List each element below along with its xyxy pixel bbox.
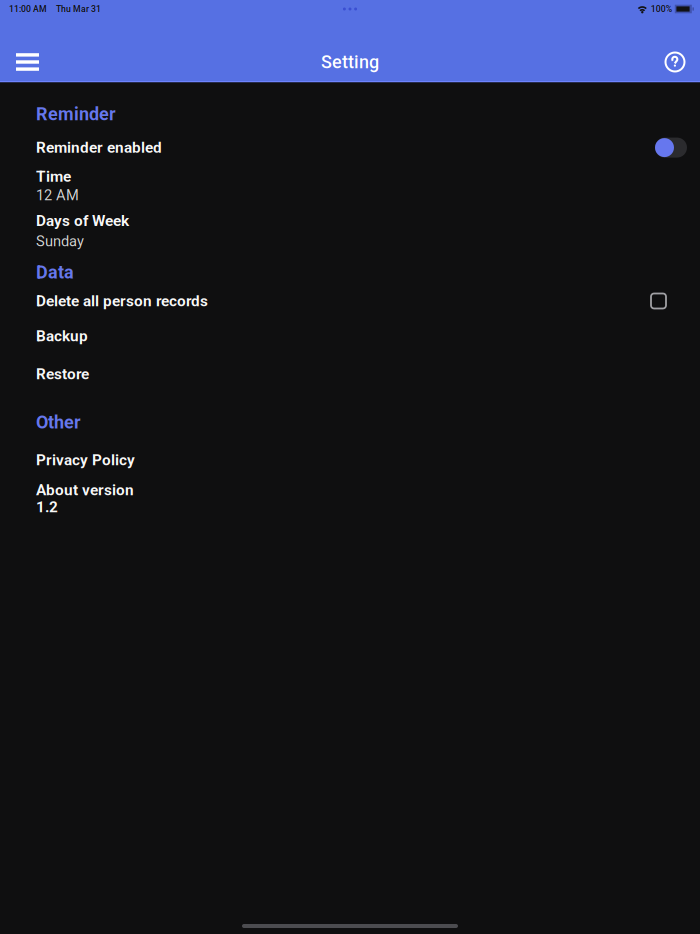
button[interactable]: Days of Week <box>0 204 700 250</box>
staticText: 11:00 AM <box>9 4 47 14</box>
staticText: 100% <box>651 4 672 14</box>
staticText: Setting <box>321 51 379 73</box>
button[interactable]: About version <box>0 469 700 516</box>
staticText: Other <box>36 412 81 433</box>
staticText: About version <box>36 481 134 499</box>
staticText: Data <box>36 262 74 283</box>
staticText: Reminder enabled <box>36 139 162 157</box>
staticText: Sunday <box>36 233 84 250</box>
staticText: Reminder <box>36 103 116 125</box>
staticText: 12 AM <box>36 187 79 204</box>
button[interactable]: Backup <box>0 310 700 345</box>
staticText: Days of Week <box>36 212 129 230</box>
button[interactable]: Help <box>651 43 700 81</box>
staticText: Delete all person records <box>36 292 208 310</box>
staticText: Restore <box>36 365 89 383</box>
button[interactable]: Restore <box>0 345 700 383</box>
staticText: 1.2 <box>36 498 58 516</box>
button[interactable]: Time <box>0 158 700 204</box>
button[interactable]: Delete all person records <box>0 283 700 310</box>
staticText: Backup <box>36 327 88 345</box>
button[interactable]: Menu <box>0 43 53 81</box>
button[interactable]: Reminder enabled <box>0 125 700 158</box>
staticText: Thu Mar 31 <box>56 4 101 14</box>
button[interactable]: Privacy Policy <box>0 433 700 469</box>
staticText: Privacy Policy <box>36 451 135 469</box>
staticText: Time <box>36 168 71 186</box>
